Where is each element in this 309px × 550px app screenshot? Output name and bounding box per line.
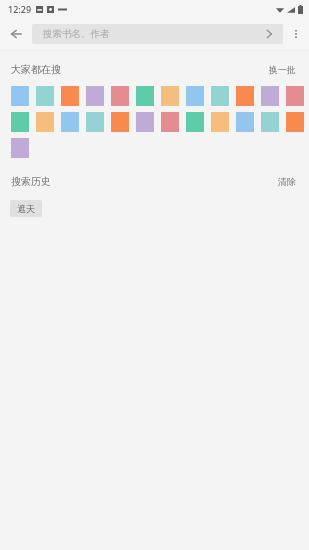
button[interactable]: 搜索书名、作者 xyxy=(32,24,283,44)
staticText: 12:29 xyxy=(8,3,32,15)
button[interactable]: Back xyxy=(0,18,32,50)
button[interactable]: 遮天 xyxy=(10,200,42,217)
button[interactable]: More options xyxy=(283,18,309,50)
staticText: 遮天 xyxy=(17,203,35,214)
staticText: 搜索历史 xyxy=(11,175,51,188)
other: Search xyxy=(262,27,276,41)
staticText: 大家都在搜 xyxy=(11,63,61,76)
staticText: 换一批 xyxy=(269,64,296,75)
button[interactable]: 清除 xyxy=(276,174,298,189)
staticText: 清除 xyxy=(278,176,296,187)
staticText: 搜索书名、作者 xyxy=(43,28,110,40)
button[interactable]: 换一批 xyxy=(267,62,298,77)
